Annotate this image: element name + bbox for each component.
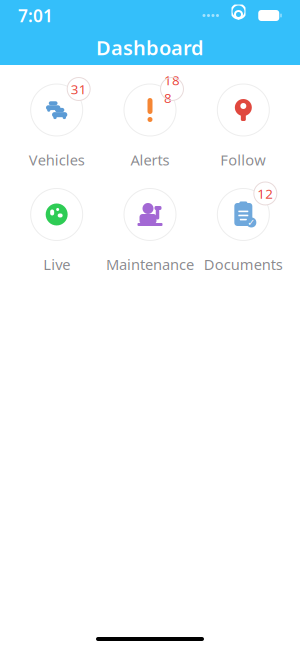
staticText: 188 bbox=[164, 71, 180, 107]
staticText: Follow bbox=[220, 150, 266, 169]
button[interactable]: ✓ bbox=[199, 183, 287, 274]
button[interactable]: Follow bbox=[199, 79, 287, 169]
staticText: ✓ bbox=[247, 217, 255, 228]
button[interactable]: 31 bbox=[13, 79, 101, 169]
staticText: Documents bbox=[204, 254, 283, 274]
button[interactable]: Maintenance bbox=[106, 183, 194, 274]
staticText: Live bbox=[43, 254, 70, 274]
staticText: Maintenance bbox=[106, 254, 194, 274]
staticText: 12 bbox=[257, 185, 273, 202]
button[interactable]: 188 bbox=[106, 79, 194, 169]
button[interactable]: Dashboard bbox=[0, 30, 300, 64]
staticText: Dashboard bbox=[96, 34, 204, 61]
staticText: 7:01 bbox=[18, 4, 53, 27]
staticText: 31 bbox=[71, 80, 87, 98]
staticText: Alerts bbox=[130, 150, 169, 169]
staticText: Vehicles bbox=[29, 150, 85, 169]
button[interactable]: Live bbox=[13, 183, 101, 274]
